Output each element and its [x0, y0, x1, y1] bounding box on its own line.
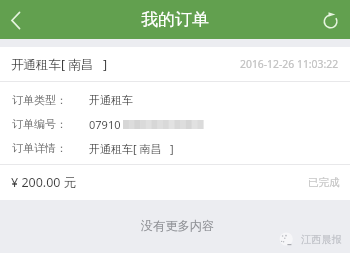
staticText: 07910 [89, 117, 121, 132]
staticText: 开通租车[ 南昌 ] [89, 141, 174, 156]
button[interactable]: Back [0, 0, 32, 39]
button[interactable]: 订单编号： [0, 112, 350, 136]
staticText: 订单详情： [12, 141, 67, 155]
staticText: 没有更多内容 [141, 218, 215, 233]
button[interactable]: Refresh [316, 0, 350, 39]
staticText: 订单编号： [12, 117, 67, 131]
staticText: 已完成 [308, 176, 340, 189]
staticText: 我的订单 [141, 9, 209, 30]
button[interactable]: ¥ 200.00 元 [0, 165, 350, 200]
staticText: ¥ 200.00 元 [11, 174, 77, 191]
button[interactable]: 开通租车[ 南昌 ] [0, 47, 350, 81]
staticText: 江西晨报 [301, 233, 342, 246]
button[interactable]: 订单类型： [0, 88, 350, 112]
staticText: 2016-12-26 11:03:22 [240, 57, 339, 71]
button[interactable]: 订单详情： [0, 136, 350, 160]
staticText: 开通租车[ 南昌 ] [11, 56, 108, 73]
staticText: 开通租车 [89, 93, 133, 107]
staticText: 订单类型： [12, 93, 67, 107]
